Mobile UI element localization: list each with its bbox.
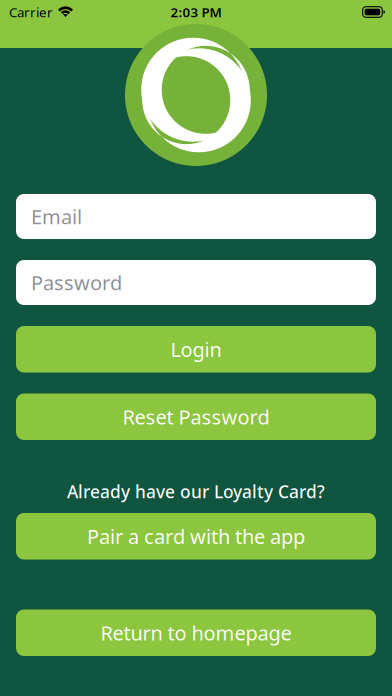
button[interactable]: Login (16, 326, 376, 372)
staticText: Password (31, 269, 122, 296)
button[interactable]: Email (16, 194, 376, 239)
button[interactable]: Return to homepage (16, 609, 376, 656)
staticText: Reset Password (122, 403, 269, 430)
staticText: Pair a card with the app (87, 523, 305, 550)
button[interactable]: Pair a card with the app (16, 513, 376, 559)
staticText: Already have our Loyalty Card? (67, 480, 325, 503)
staticText: Login (170, 336, 221, 363)
staticText: Carrier (9, 3, 53, 21)
staticText: Email (31, 203, 82, 230)
button[interactable]: Reset Password (16, 393, 376, 440)
staticText: 2:03 PM (170, 3, 221, 21)
button[interactable]: Password (16, 260, 376, 305)
staticText: Return to homepage (100, 619, 291, 646)
